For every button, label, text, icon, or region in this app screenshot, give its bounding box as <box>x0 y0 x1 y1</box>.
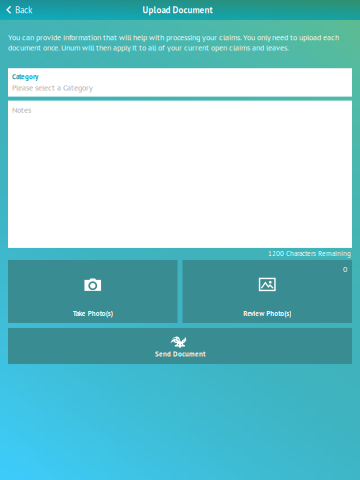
button[interactable]: Back <box>0 0 42 20</box>
staticText: Please select a Category <box>12 82 93 93</box>
staticText: Send Document <box>155 349 205 358</box>
staticText: 0 <box>343 264 347 274</box>
staticText: You can provide information that will he… <box>8 32 339 53</box>
staticText: 1200 Characters Remaining <box>268 249 351 258</box>
button[interactable]: Review Photo(s) <box>182 260 352 323</box>
staticText: Upload Document <box>142 4 212 16</box>
button[interactable]: Send Document <box>8 328 352 364</box>
staticText: Category <box>12 72 38 81</box>
button[interactable]: Take Photo(s) <box>8 260 177 323</box>
staticText: Notes <box>12 105 31 115</box>
staticText: Back <box>15 4 32 16</box>
staticText: Review Photo(s) <box>243 309 291 318</box>
staticText: Take Photo(s) <box>73 309 113 318</box>
